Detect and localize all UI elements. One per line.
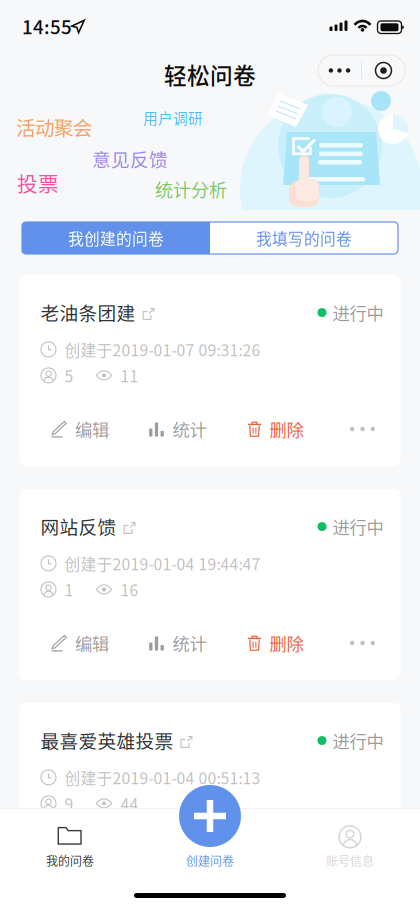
staticText: 最喜爱英雄投票 [40,726,173,753]
staticText: 投票 [17,168,59,198]
staticText: 44 [120,792,138,815]
button[interactable]: More actions [337,628,387,658]
staticText: 删除 [269,416,303,442]
button[interactable]: 统计 [141,628,213,658]
button[interactable]: 编辑 [43,628,115,658]
staticText: 16 [120,578,138,601]
button[interactable]: 我填写的问卷 [210,222,398,254]
button[interactable]: 统计 [141,842,213,872]
staticText: 创建于2019-01-04 00:51:13 [64,766,260,789]
staticText: 编辑 [75,416,109,442]
staticText: 进行中 [332,300,383,325]
staticText: 1 [64,578,73,601]
staticText: 轻松问卷 [164,58,256,91]
button[interactable]: 统计 [141,414,213,444]
button[interactable]: More actions [337,414,387,444]
button[interactable]: 删除 [239,628,311,658]
staticText: 账号信息 [326,852,374,869]
staticText: 统计分析 [155,176,227,202]
staticText: 进行中 [332,728,383,753]
staticText: 11 [120,364,138,387]
staticText: 统计 [172,630,206,656]
staticText: 统计 [172,844,206,870]
staticText: 老油条团建 [40,298,135,325]
staticText: 5 [64,364,73,387]
button[interactable]: 删除 [239,414,311,444]
button[interactable]: 我的问卷 [0,819,140,877]
staticText: 进行中 [332,514,383,539]
staticText: 创建于2019-01-04 19:44:47 [64,552,260,575]
staticText: 创建问卷 [186,852,234,869]
staticText: 意见反馈 [92,145,168,172]
button[interactable]: Close mini program [362,55,405,85]
staticText: 活动聚会 [16,113,92,141]
button[interactable]: 编辑 [43,842,115,872]
staticText: 我的问卷 [46,852,94,869]
button[interactable]: 账号信息 [280,819,420,877]
button[interactable]: 我创建的问卷 [22,222,210,254]
staticText: 9 [64,792,73,815]
staticText: 我创建的问卷 [68,227,164,249]
button[interactable]: Create survey [179,785,241,847]
staticText: 编辑 [75,630,109,656]
staticText: 创建于2019-01-07 09:31:26 [64,338,260,361]
staticText: 用户调研 [143,107,203,128]
staticText: 网站反馈 [40,512,116,539]
staticText: 编辑 [75,844,109,870]
button[interactable]: 编辑 [43,414,115,444]
button[interactable]: Create survey [140,819,280,877]
button[interactable]: More [318,55,361,85]
staticText: 统计 [172,416,206,442]
staticText: 我填写的问卷 [256,227,352,249]
staticText: 14:55 [22,12,72,39]
staticText: 删除 [269,630,303,656]
button[interactable]: More actions [337,842,387,872]
